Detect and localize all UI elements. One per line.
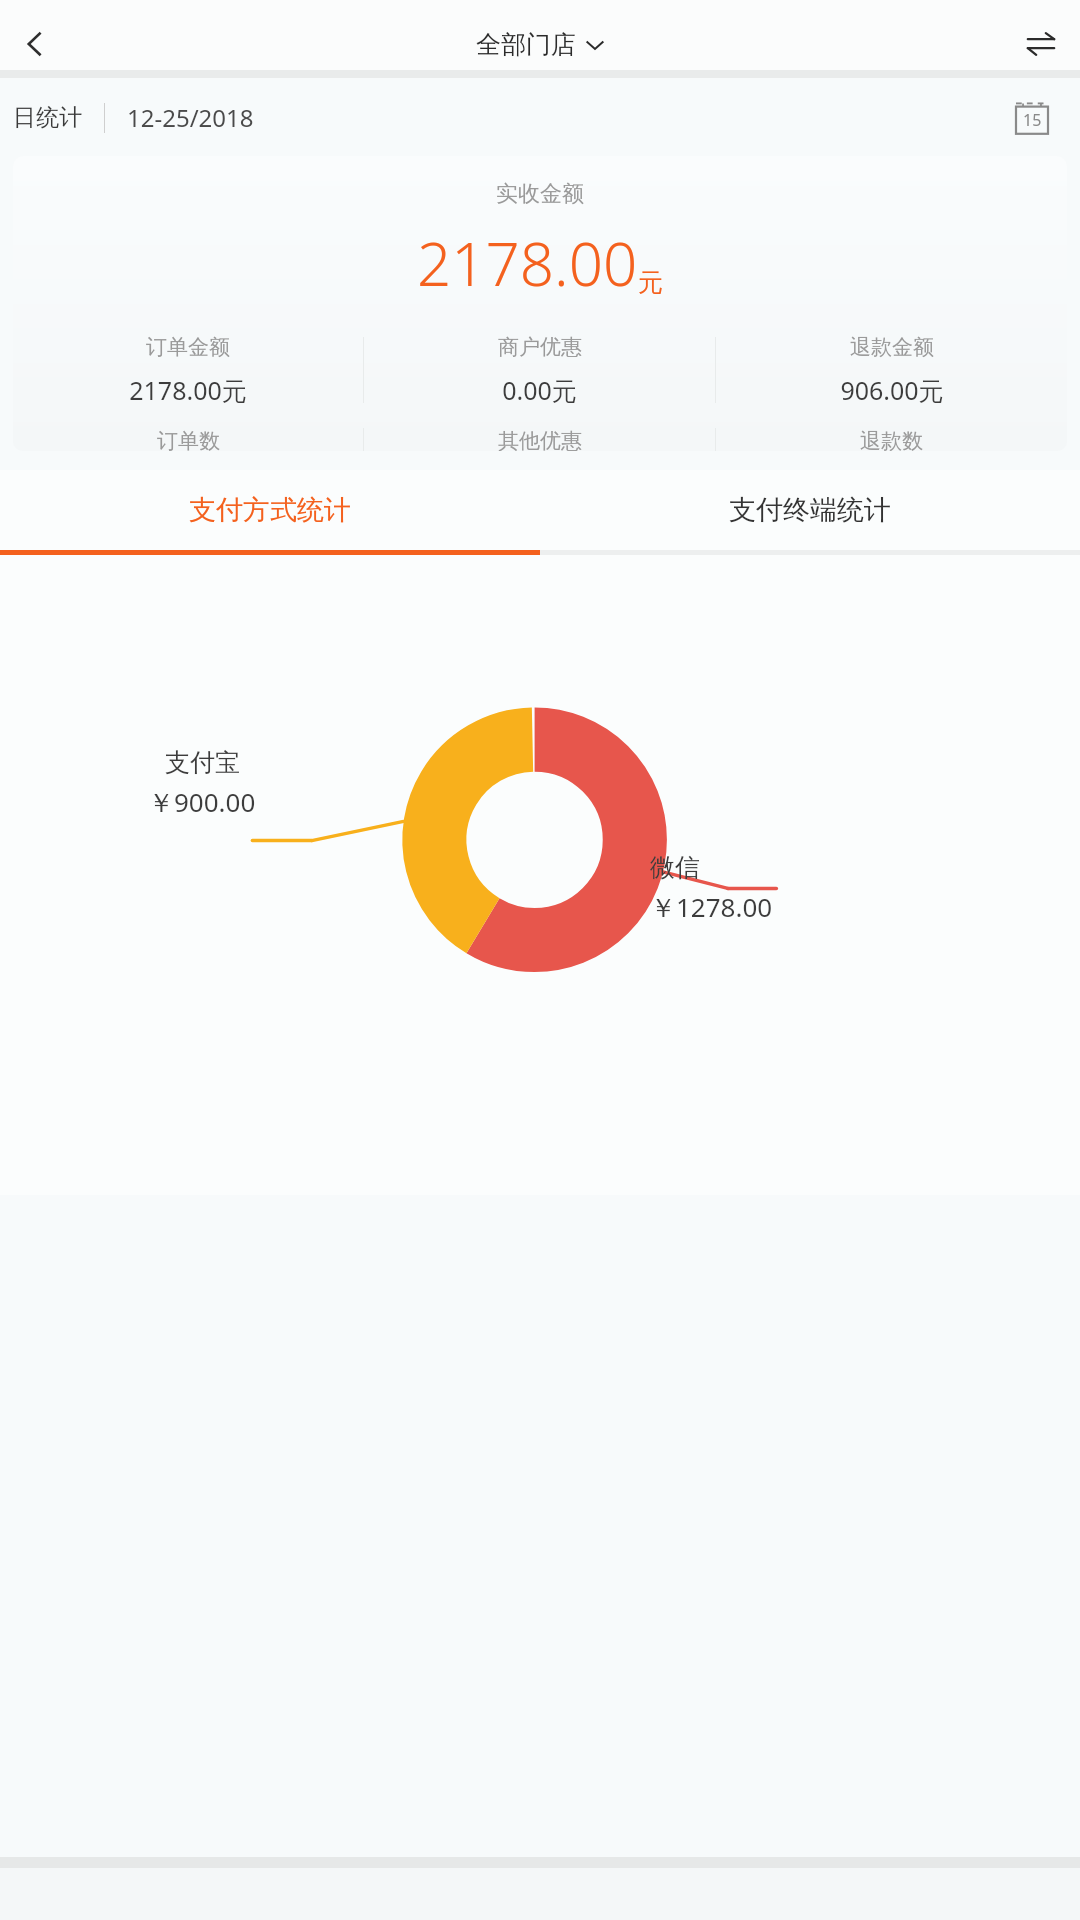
button[interactable]: 日统计 [13, 101, 254, 134]
staticText: 12-25/2018 [127, 101, 254, 134]
button[interactable]: Back [6, 18, 64, 70]
staticText: 15 [1023, 109, 1042, 131]
staticText: 全部门店 [476, 29, 576, 60]
staticText: 支付宝 [165, 747, 240, 778]
button[interactable]: 全部门店 [476, 29, 605, 60]
staticText: 微信 [650, 852, 700, 883]
staticText: 订单数 [157, 428, 220, 451]
staticText: 商户优惠 [498, 334, 582, 360]
button[interactable]: 商户优惠 [364, 326, 715, 414]
button[interactable]: 支付方式统计 [0, 470, 540, 550]
staticText: 906.00元 [840, 373, 944, 407]
staticText: 支付方式统计 [189, 493, 351, 527]
button[interactable]: Switch [1012, 18, 1070, 70]
button[interactable]: 订单金额 [13, 326, 363, 414]
staticText: 0.00元 [502, 373, 577, 407]
staticText: 订单金额 [146, 334, 230, 360]
button[interactable]: 退款数 [716, 428, 1067, 451]
staticText: 日统计 [13, 103, 82, 132]
button[interactable]: 退款金额 [716, 326, 1067, 414]
staticText: 元 [638, 267, 663, 298]
staticText: 退款金额 [850, 334, 934, 360]
staticText: 2178.00 [417, 222, 638, 304]
staticText: 支付终端统计 [729, 493, 891, 527]
staticText: 退款数 [860, 428, 923, 451]
staticText: 其他优惠 [498, 428, 582, 451]
staticText: 实收金额 [496, 180, 584, 208]
button[interactable]: 订单数 [13, 428, 363, 451]
staticText: ￥900.00 [148, 784, 256, 820]
button[interactable]: Pick date [1000, 85, 1064, 149]
button[interactable]: 支付终端统计 [540, 470, 1080, 550]
button[interactable]: 其他优惠 [364, 428, 715, 451]
staticText: ￥1278.00 [650, 889, 773, 925]
staticText: 2178.00元 [129, 373, 247, 407]
